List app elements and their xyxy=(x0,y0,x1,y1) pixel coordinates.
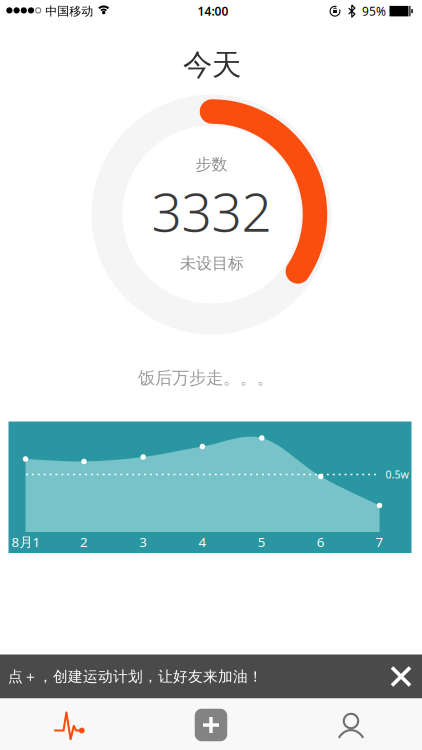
staticText: 饭后万步走。。。 xyxy=(138,367,274,389)
staticText: 8月1 xyxy=(11,533,40,551)
button[interactable]: 运动 xyxy=(10,700,130,750)
staticText: 5 xyxy=(258,533,266,551)
staticText: 中国移动 xyxy=(45,4,93,18)
button[interactable]: 我的 xyxy=(291,700,411,750)
staticText: 14:00 xyxy=(197,3,228,19)
staticText: 点＋，创建运动计划，让好友来加油！ xyxy=(8,667,263,685)
staticText: 今天 xyxy=(183,47,241,83)
staticText: 4 xyxy=(198,533,206,551)
staticText: 步数 xyxy=(195,155,227,174)
staticText: 未设目标 xyxy=(180,254,244,273)
staticText: 2 xyxy=(80,533,88,551)
button[interactable]: 创建 xyxy=(151,700,271,750)
staticText: 6 xyxy=(317,533,325,551)
staticText: 7 xyxy=(375,533,383,551)
staticText: 95% xyxy=(362,3,386,19)
staticText: 0.5w xyxy=(385,467,408,481)
staticText: 3332 xyxy=(151,176,271,246)
button[interactable]: 关闭 xyxy=(382,657,420,695)
staticText: 3 xyxy=(139,533,147,551)
